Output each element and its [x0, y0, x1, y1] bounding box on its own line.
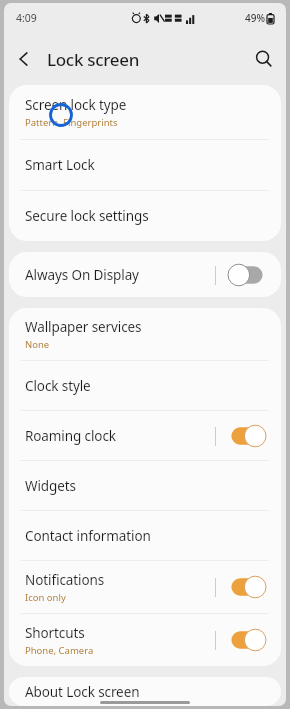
- button[interactable]: Toggle on: [227, 575, 267, 599]
- button[interactable]: Toggle on: [227, 424, 267, 448]
- button[interactable]: Shortcuts: [9, 614, 281, 666]
- button[interactable]: Search: [242, 37, 286, 81]
- staticText: Smart Lock: [25, 156, 95, 174]
- staticText: None: [25, 338, 50, 351]
- staticText: 49%: [245, 11, 265, 25]
- staticText: Lock screen: [47, 48, 140, 71]
- button[interactable]: Smart Lock: [9, 140, 281, 190]
- staticText: Pattern, Fingerprints: [25, 116, 118, 129]
- staticText: Secure lock settings: [25, 207, 149, 225]
- staticText: Clock style: [25, 377, 91, 395]
- staticText: About Lock screen: [25, 683, 140, 701]
- button[interactable]: Clock style: [9, 361, 281, 410]
- staticText: Always On Display: [25, 266, 139, 284]
- staticText: Contact information: [25, 527, 151, 545]
- staticText: Roaming clock: [25, 427, 116, 445]
- button[interactable]: Toggle off: [227, 263, 267, 287]
- staticText: Notifications: [25, 571, 105, 589]
- button[interactable]: About Lock screen: [9, 677, 281, 706]
- staticText: Icon only: [25, 591, 66, 604]
- button[interactable]: Roaming clock: [9, 411, 281, 460]
- button[interactable]: Always On Display: [9, 252, 281, 297]
- button[interactable]: Contact information: [9, 511, 281, 560]
- staticText: Shortcuts: [25, 624, 85, 642]
- button[interactable]: Toggle on: [227, 628, 267, 652]
- button[interactable]: Wallpaper services: [9, 308, 281, 360]
- staticText: 4:09: [16, 11, 37, 25]
- button[interactable]: Widgets: [9, 461, 281, 510]
- staticText: Phone, Camera: [25, 644, 94, 657]
- staticText: Wallpaper services: [25, 318, 142, 336]
- button[interactable]: Back: [4, 39, 44, 79]
- button[interactable]: Screen lock type: [9, 85, 281, 139]
- staticText: Screen lock type: [25, 96, 127, 114]
- staticText: Widgets: [25, 477, 76, 495]
- button[interactable]: Notifications: [9, 561, 281, 613]
- button[interactable]: Secure lock settings: [9, 191, 281, 241]
